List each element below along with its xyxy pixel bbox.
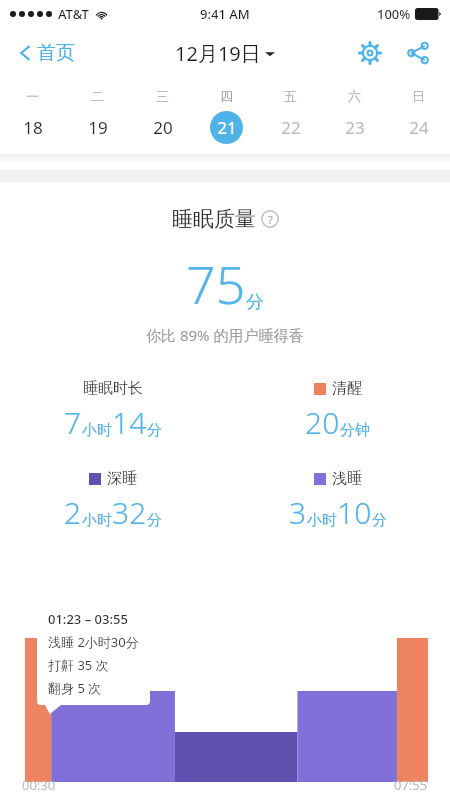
staticText: 六 xyxy=(348,88,361,104)
staticText: 20 xyxy=(153,116,173,139)
staticText: 18 xyxy=(23,116,43,139)
button[interactable]: 21 xyxy=(194,111,258,144)
staticText: 20 xyxy=(305,402,340,443)
staticText: 23 xyxy=(345,116,365,139)
staticText: 分 xyxy=(246,291,264,314)
staticText: 01:23 – 03:55 xyxy=(48,610,128,628)
staticText: 四 xyxy=(220,88,233,104)
staticText: 首页 xyxy=(37,41,75,65)
staticText: 浅睡 2小时30分 xyxy=(48,633,139,651)
staticText: 32 xyxy=(112,492,147,533)
staticText: 10 xyxy=(337,492,372,533)
staticText: 12月19日 xyxy=(175,40,261,67)
button[interactable]: Help xyxy=(261,210,279,228)
staticText: 小时 xyxy=(82,511,112,530)
staticText: 24 xyxy=(409,116,429,139)
staticText: 小时 xyxy=(307,511,337,530)
staticText: 五 xyxy=(284,88,297,104)
staticText: 三 xyxy=(156,88,169,104)
staticText: 21 xyxy=(217,116,237,139)
staticText: 分 xyxy=(147,511,162,530)
staticText: 9:41 AM xyxy=(200,5,250,23)
staticText: 07:55 xyxy=(394,776,428,794)
staticText: 2 xyxy=(64,492,82,533)
button[interactable]: 19 xyxy=(65,111,130,144)
staticText: 3 xyxy=(289,492,307,533)
staticText: AT&T xyxy=(58,5,89,23)
staticText: 00:30 xyxy=(22,776,56,794)
button[interactable]: 18 xyxy=(0,111,65,144)
button[interactable]: 12月19日 xyxy=(169,35,281,72)
staticText: 19 xyxy=(88,116,108,139)
staticText: 日 xyxy=(412,88,425,104)
staticText: 分钟 xyxy=(340,421,370,440)
staticText: 分 xyxy=(372,511,387,530)
staticText: 打鼾 35 次 xyxy=(48,656,109,674)
staticText: 75 xyxy=(186,248,246,319)
staticText: 14 xyxy=(112,402,147,443)
staticText: 一 xyxy=(26,88,39,104)
button[interactable]: 20 xyxy=(130,111,194,144)
staticText: 22 xyxy=(281,116,301,139)
staticText: 睡眠质量 xyxy=(172,206,256,232)
staticText: 100% xyxy=(377,5,411,23)
button[interactable]: 首页 xyxy=(14,35,79,71)
staticText: 深睡 xyxy=(107,469,137,488)
staticText: 浅睡 xyxy=(332,469,362,488)
button[interactable]: Settings xyxy=(352,35,388,71)
staticText: 清醒 xyxy=(332,379,362,398)
staticText: 二 xyxy=(91,88,104,104)
staticText: 7 xyxy=(64,402,82,443)
staticText: 你比 89% 的用户睡得香 xyxy=(146,325,304,345)
staticText: ? xyxy=(268,212,273,227)
button[interactable]: 24 xyxy=(386,111,450,144)
button[interactable]: 23 xyxy=(322,111,386,144)
button[interactable]: 22 xyxy=(258,111,322,144)
staticText: 翻身 5 次 xyxy=(48,679,102,697)
staticText: 分 xyxy=(147,421,162,440)
staticText: 小时 xyxy=(82,421,112,440)
staticText: 睡眠时长 xyxy=(83,379,143,398)
button[interactable]: Share xyxy=(400,35,436,71)
